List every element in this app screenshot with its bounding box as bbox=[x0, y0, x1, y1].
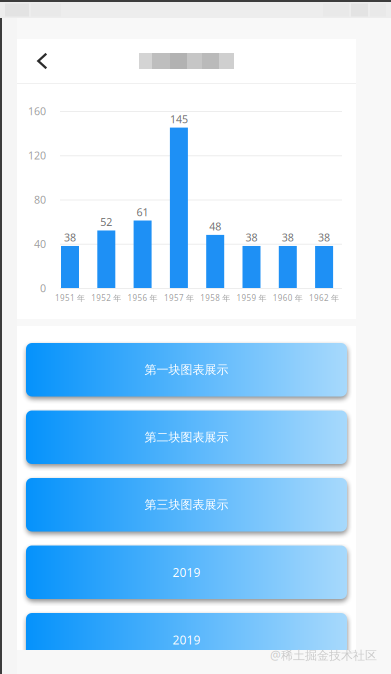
staticText: 48 bbox=[209, 219, 221, 233]
staticText: 80 bbox=[34, 192, 46, 207]
staticText: 38 bbox=[318, 230, 330, 245]
staticText: 38 bbox=[64, 230, 76, 245]
staticText: 145 bbox=[170, 112, 188, 126]
staticText: 1956 年 bbox=[128, 293, 158, 303]
button[interactable]: 第三块图表展示 bbox=[26, 478, 347, 531]
staticText: 120 bbox=[28, 148, 46, 162]
staticText: 1951 年 bbox=[55, 293, 85, 303]
staticText: 1960 年 bbox=[273, 293, 303, 303]
staticText: 160 bbox=[28, 104, 46, 118]
button[interactable]: 第二块图表展示 bbox=[26, 410, 347, 464]
staticText: @稀土掘金技术社区 bbox=[270, 647, 377, 663]
staticText: 38 bbox=[245, 230, 257, 245]
button[interactable]: 2019 bbox=[26, 613, 347, 666]
staticText: 0 bbox=[40, 281, 46, 295]
staticText: 1957 年 bbox=[164, 293, 194, 303]
button[interactable]: 第一块图表展示 bbox=[26, 343, 347, 396]
staticText: 1958 年 bbox=[200, 293, 230, 303]
button[interactable]: Back bbox=[17, 38, 68, 83]
staticText: 61 bbox=[137, 205, 149, 219]
staticText: 第二块图表展示 bbox=[144, 430, 228, 445]
staticText: 2019 bbox=[172, 632, 200, 648]
staticText: 第三块图表展示 bbox=[144, 497, 228, 512]
staticText: 第一块图表展示 bbox=[144, 362, 228, 377]
staticText: 1959 年 bbox=[236, 293, 266, 303]
staticText: 1952 年 bbox=[91, 293, 121, 303]
staticText: 40 bbox=[34, 237, 46, 251]
staticText: 52 bbox=[100, 215, 112, 229]
staticText: 38 bbox=[282, 230, 294, 245]
button[interactable]: 2019 bbox=[26, 545, 347, 599]
staticText: 2019 bbox=[172, 564, 200, 580]
staticText: 1962 年 bbox=[309, 293, 339, 303]
